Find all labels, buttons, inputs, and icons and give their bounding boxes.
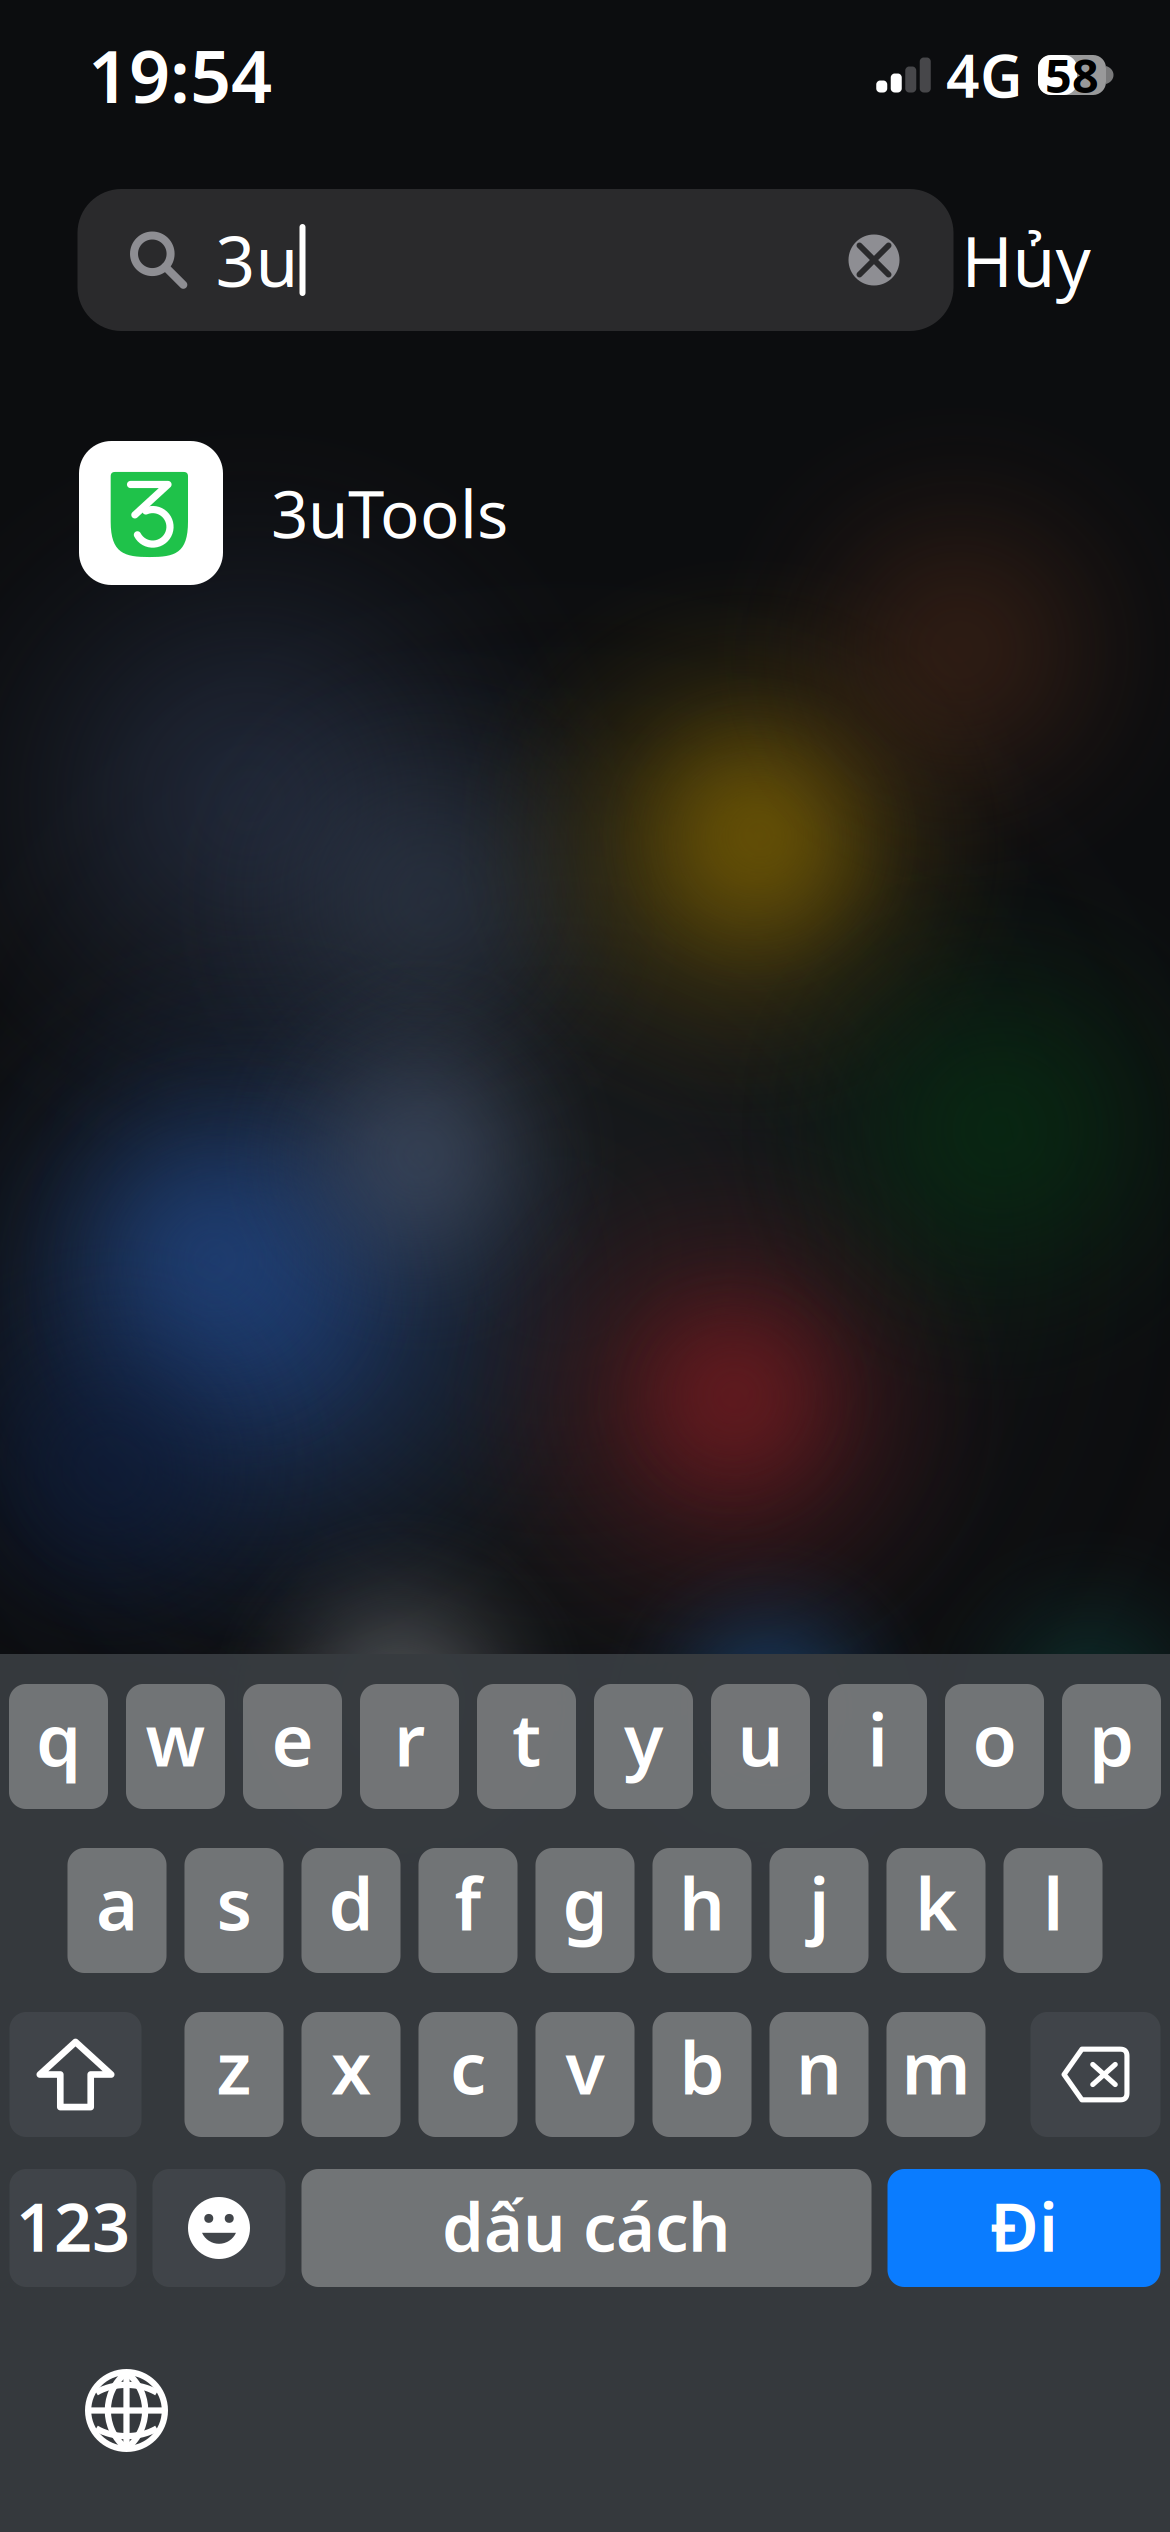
button[interactable]: Delete — [1030, 2012, 1160, 2137]
button[interactable]: y — [594, 1684, 693, 1809]
button[interactable]: n — [769, 2012, 868, 2137]
button[interactable]: m — [886, 2012, 985, 2137]
staticText: Đi — [990, 2182, 1058, 2270]
button[interactable]: l — [1003, 1848, 1102, 1973]
staticText: 58 — [1045, 44, 1099, 106]
staticText: 4G — [946, 36, 1023, 114]
staticText: y — [624, 1691, 663, 1786]
staticText: s — [216, 1855, 251, 1950]
staticText: p — [1089, 1691, 1134, 1786]
button[interactable]: Emoji — [152, 2169, 285, 2287]
staticText: 3u — [215, 214, 298, 306]
button[interactable]: q — [9, 1684, 108, 1809]
button[interactable]: d — [301, 1848, 400, 1973]
staticText: h — [679, 1855, 725, 1950]
button[interactable]: j — [769, 1848, 868, 1973]
button[interactable]: e — [243, 1684, 342, 1809]
staticText: m — [901, 2019, 970, 2114]
button[interactable]: z — [184, 2012, 283, 2137]
staticText: q — [36, 1691, 81, 1786]
button[interactable]: v — [535, 2012, 634, 2137]
staticText: d — [328, 1855, 373, 1950]
button[interactable]: r — [360, 1684, 459, 1809]
staticText: r — [394, 1691, 425, 1786]
button[interactable]: Next keyboard — [85, 2369, 168, 2452]
staticText: j — [809, 1855, 829, 1950]
button[interactable]: s — [184, 1848, 283, 1973]
button[interactable]: Hủy — [961, 189, 1090, 331]
staticText: dấu cách — [442, 2182, 731, 2270]
staticText: u — [737, 1691, 783, 1786]
staticText: l — [1043, 1855, 1063, 1950]
staticText: Hủy — [961, 214, 1090, 306]
staticText: i — [867, 1691, 887, 1786]
staticText: 19:54 — [88, 27, 272, 123]
button[interactable]: Đi — [887, 2169, 1160, 2287]
staticText: 3uTools — [271, 470, 508, 556]
staticText: f — [454, 1855, 481, 1950]
staticText: o — [972, 1691, 1016, 1786]
staticText: w — [145, 1691, 205, 1786]
staticText: 123 — [16, 2182, 130, 2270]
button[interactable]: i — [828, 1684, 927, 1809]
staticText: k — [915, 1855, 957, 1950]
button[interactable]: w — [126, 1684, 225, 1809]
staticText: e — [271, 1691, 313, 1786]
button[interactable]: c — [418, 2012, 517, 2137]
staticText: x — [331, 2019, 371, 2114]
button[interactable]: a — [67, 1848, 166, 1973]
button[interactable]: k — [886, 1848, 985, 1973]
button[interactable]: u — [711, 1684, 810, 1809]
staticText: g — [562, 1855, 607, 1950]
button[interactable]: x — [301, 2012, 400, 2137]
staticText: b — [679, 2019, 724, 2114]
button[interactable]: p — [1062, 1684, 1161, 1809]
button[interactable]: 123 — [9, 2169, 136, 2287]
staticText: c — [450, 2019, 486, 2114]
staticText: n — [796, 2019, 842, 2114]
staticText: v — [565, 2019, 604, 2114]
button[interactable]: b — [652, 2012, 751, 2137]
button[interactable]: Clear text — [848, 234, 953, 285]
button[interactable]: h — [652, 1848, 751, 1973]
staticText: t — [512, 1691, 541, 1786]
staticText: z — [216, 2019, 251, 2114]
button[interactable]: dấu cách — [301, 2169, 871, 2287]
button[interactable]: o — [945, 1684, 1044, 1809]
button[interactable]: t — [477, 1684, 576, 1809]
staticText: a — [96, 1855, 138, 1950]
button[interactable]: f — [418, 1848, 517, 1973]
button[interactable]: 3uTools — [0, 331, 1170, 585]
button[interactable]: Shift — [9, 2012, 141, 2137]
button[interactable]: g — [535, 1848, 634, 1973]
